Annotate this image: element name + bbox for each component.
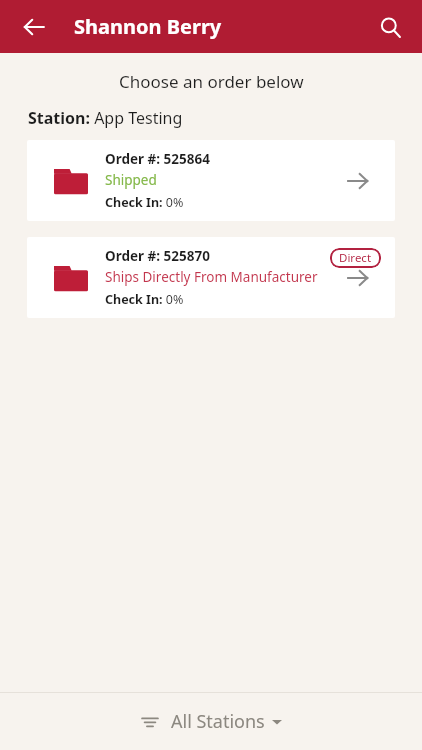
- staticText: Order #: 525870: [105, 247, 210, 265]
- button[interactable]: Search: [368, 5, 412, 49]
- staticText: Station: App Testing: [28, 107, 183, 129]
- button[interactable]: All Stations: [131, 701, 292, 742]
- staticText: Order #: 525864: [105, 150, 210, 168]
- button[interactable]: Order #: 525864: [27, 140, 395, 221]
- button[interactable]: Order #: 525870: [27, 237, 395, 318]
- staticText: Choose an order below: [119, 70, 304, 93]
- button[interactable]: Back: [12, 5, 56, 49]
- staticText: Check In: 0%: [105, 194, 184, 211]
- staticText: Shipped: [105, 171, 157, 189]
- other: Open order 525870: [343, 263, 373, 293]
- staticText: All Stations: [171, 709, 265, 734]
- staticText: Direct: [339, 250, 372, 266]
- staticText: Check In: 0%: [105, 291, 184, 308]
- staticText: Ships Directly From Manufacturer: [105, 268, 318, 286]
- button[interactable]: Direct: [330, 248, 381, 268]
- other: Open order 525864: [343, 166, 373, 196]
- staticText: Shannon Berry: [74, 13, 222, 40]
